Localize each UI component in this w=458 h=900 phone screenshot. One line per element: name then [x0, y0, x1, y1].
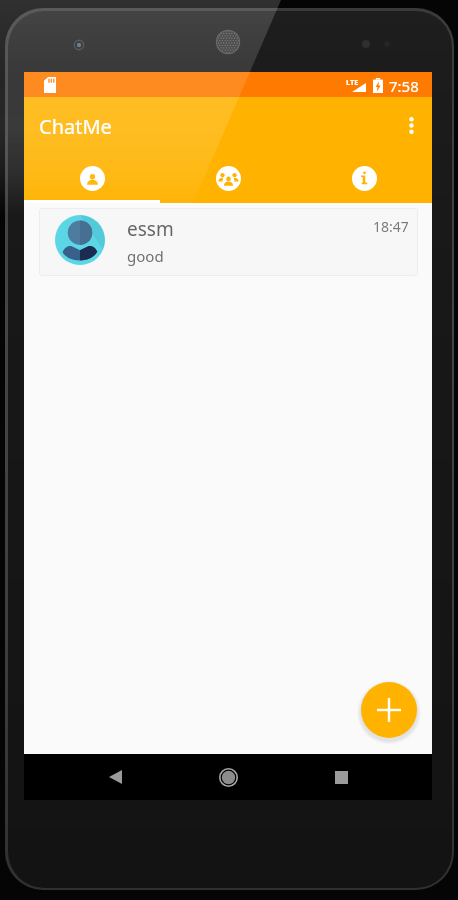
button[interactable]: Contacts	[24, 149, 160, 203]
button[interactable]: New chat	[361, 682, 417, 738]
button[interactable]: Info	[296, 149, 432, 203]
staticText: 7:58	[389, 76, 419, 96]
staticText: good	[127, 246, 164, 266]
button[interactable]: essm	[39, 208, 418, 276]
button[interactable]: More options	[389, 105, 434, 145]
button[interactable]: Groups	[160, 149, 296, 203]
button[interactable]: Home	[204, 754, 252, 800]
button[interactable]: Recents	[317, 754, 365, 800]
button[interactable]: Back	[91, 754, 139, 800]
staticText: 18:47	[373, 217, 409, 236]
staticText: ChatMe	[39, 113, 112, 140]
staticText: LTE	[346, 77, 359, 87]
staticText: essm	[127, 216, 174, 242]
